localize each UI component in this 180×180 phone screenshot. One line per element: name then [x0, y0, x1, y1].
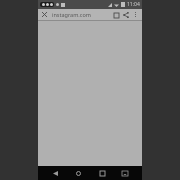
staticText: instagram.com [52, 11, 91, 18]
button[interactable]: Share [121, 10, 131, 20]
button[interactable]: Recent apps [95, 166, 109, 180]
button[interactable]: Keyboard [118, 166, 132, 180]
button[interactable]: instagram.com [52, 9, 111, 20]
button[interactable]: Close [40, 10, 49, 19]
button[interactable]: Open in browser [111, 10, 121, 20]
staticText: 11:04 [127, 1, 140, 8]
button[interactable]: Home [71, 166, 85, 180]
button[interactable]: Back [48, 166, 62, 180]
button[interactable]: More options [131, 10, 140, 19]
